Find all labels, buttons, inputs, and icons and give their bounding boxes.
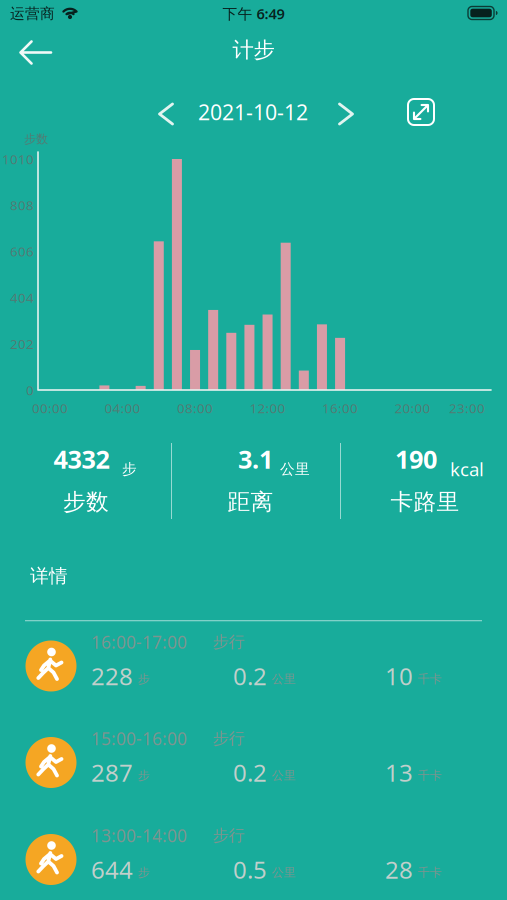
staticText: 23:00: [449, 399, 485, 417]
staticText: 下午 6:49: [222, 4, 284, 23]
staticText: 步数: [63, 488, 109, 516]
staticText: 228: [91, 660, 133, 692]
staticText: 千卡: [418, 672, 442, 686]
staticText: 287: [91, 757, 133, 788]
staticText: 404: [10, 289, 34, 306]
staticText: 步: [138, 865, 150, 880]
staticText: 步: [138, 768, 150, 783]
staticText: 步数: [24, 132, 48, 146]
staticText: 08:00: [177, 399, 213, 417]
button[interactable]: [408, 99, 434, 125]
staticText: 1010: [2, 150, 34, 168]
staticText: 步: [122, 460, 137, 478]
staticText: 公里: [280, 460, 310, 478]
staticText: 千卡: [418, 768, 442, 783]
staticText: 步行: [213, 826, 245, 845]
staticText: 步行: [213, 632, 245, 652]
staticText: 距离: [227, 488, 273, 516]
staticText: 2021-10-12: [198, 98, 308, 126]
button[interactable]: [324, 92, 368, 136]
staticText: 4332: [53, 442, 109, 476]
staticText: 28: [385, 854, 413, 885]
staticText: 20:00: [395, 399, 431, 417]
staticText: 12:00: [250, 399, 286, 417]
staticText: 0.2: [233, 757, 267, 788]
staticText: 计步: [232, 37, 274, 63]
staticText: 808: [10, 196, 34, 214]
staticText: 步: [138, 672, 150, 686]
button[interactable]: 16:00-17:00: [0, 619, 507, 715]
staticText: 千卡: [418, 865, 442, 880]
staticText: 3.1: [238, 442, 273, 476]
staticText: 公里: [272, 672, 296, 686]
staticText: kcal: [450, 457, 484, 481]
staticText: 190: [395, 442, 437, 476]
button[interactable]: 2021-10-12: [173, 97, 333, 127]
staticText: 04:00: [104, 399, 140, 417]
button[interactable]: 13:00-14:00: [0, 812, 507, 900]
staticText: 202: [10, 335, 34, 353]
button[interactable]: [0, 30, 64, 75]
staticText: 公里: [272, 865, 296, 880]
staticText: 606: [10, 242, 34, 260]
staticText: 644: [91, 854, 133, 885]
staticText: 16:00-17:00: [91, 630, 187, 653]
staticText: 详情: [30, 564, 68, 587]
staticText: 运营商: [10, 4, 55, 22]
button[interactable]: 15:00-16:00: [0, 715, 507, 811]
staticText: 00:00: [32, 399, 68, 417]
staticText: 0: [26, 381, 34, 399]
staticText: 0.5: [233, 854, 267, 885]
staticText: 13:00-14:00: [91, 824, 187, 847]
staticText: 0.2: [233, 660, 267, 692]
staticText: 公里: [272, 768, 296, 783]
staticText: 16:00: [322, 399, 358, 417]
staticText: 15:00-16:00: [91, 727, 187, 750]
staticText: 卡路里: [390, 488, 459, 516]
staticText: 13: [385, 757, 413, 788]
button[interactable]: [144, 92, 188, 136]
staticText: 步行: [213, 729, 245, 748]
staticText: 10: [385, 660, 413, 692]
